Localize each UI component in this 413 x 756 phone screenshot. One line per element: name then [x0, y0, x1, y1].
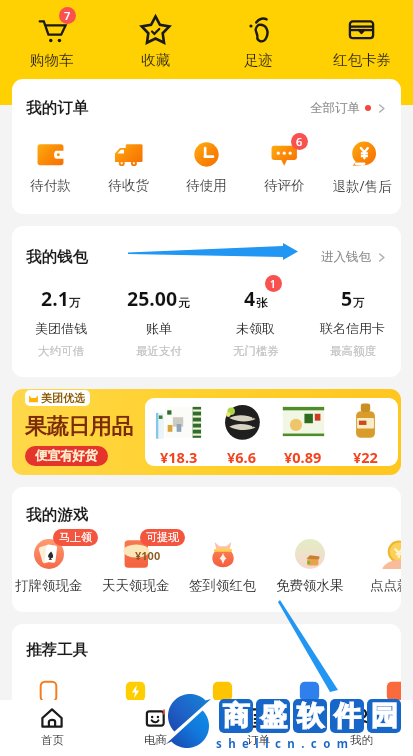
- button[interactable]: 待付款: [12, 141, 89, 194]
- staticText: ¥0.89: [284, 447, 322, 466]
- staticText: 我的游戏: [26, 505, 88, 525]
- button[interactable]: 打牌领现金: [12, 539, 92, 594]
- staticText: 万: [353, 296, 365, 310]
- staticText: 足迹: [244, 51, 273, 69]
- staticText: 件: [334, 699, 361, 733]
- staticText: 7: [64, 8, 71, 23]
- staticText: 红包卡券: [333, 51, 391, 69]
- staticText: 我的订单: [26, 98, 88, 118]
- staticText: 万: [69, 296, 81, 310]
- button[interactable]: 退款/售后: [323, 141, 401, 195]
- staticText: 待使用: [186, 177, 227, 194]
- button[interactable]: ¥6.6: [210, 398, 272, 466]
- staticText: 首页: [41, 733, 64, 747]
- button[interactable]: ¥22: [334, 398, 396, 466]
- staticText: shellcn.com: [216, 736, 355, 752]
- button[interactable]: [266, 680, 353, 703]
- staticText: 6: [296, 134, 303, 149]
- button[interactable]: [12, 680, 92, 703]
- staticText: 可提现: [146, 530, 179, 544]
- button[interactable]: 红包卡券: [310, 0, 413, 79]
- button[interactable]: 待使用: [167, 141, 245, 194]
- button[interactable]: 首页: [0, 706, 104, 756]
- button[interactable]: 点点就赚: [353, 539, 401, 594]
- button[interactable]: 足迹: [207, 0, 310, 79]
- staticText: 联名信用卡: [320, 320, 385, 336]
- staticText: 未领取: [236, 320, 275, 336]
- staticText: 张: [256, 296, 268, 310]
- staticText: 软: [297, 699, 324, 733]
- staticText: 4: [244, 285, 256, 312]
- staticText: 我的: [350, 733, 373, 747]
- button[interactable]: 签到领红包: [179, 539, 266, 594]
- button[interactable]: 进入钱包: [317, 245, 391, 269]
- staticText: 待付款: [30, 177, 71, 194]
- staticText: 待收货: [108, 177, 149, 194]
- staticText: 账单: [146, 320, 172, 336]
- button[interactable]: ¥0.89: [272, 398, 334, 466]
- staticText: 马上领: [59, 530, 92, 544]
- staticText: 签到领红包: [189, 577, 257, 594]
- staticText: ¥22: [353, 447, 378, 466]
- staticText: 天天领现金: [102, 577, 170, 594]
- staticText: 免费领水果: [276, 577, 344, 594]
- button[interactable]: 待收货: [89, 141, 167, 194]
- staticText: 便宜有好货: [35, 448, 98, 464]
- button[interactable]: 订单: [207, 706, 310, 756]
- staticText: 待评价: [264, 177, 305, 194]
- button[interactable]: 收藏: [104, 0, 207, 79]
- staticText: 最高额度: [330, 344, 376, 358]
- staticText: 盛: [260, 699, 287, 733]
- button[interactable]: 电商: [104, 706, 207, 756]
- button[interactable]: 25.00: [110, 285, 207, 358]
- staticText: ¥18.3: [160, 447, 198, 466]
- staticText: 全部订单: [310, 100, 360, 116]
- staticText: 最近支付: [136, 344, 182, 358]
- staticText: 25.00: [127, 285, 178, 312]
- staticText: 我的钱包: [26, 247, 88, 267]
- staticText: 2.1: [41, 285, 69, 312]
- staticText: 美团优选: [41, 391, 85, 405]
- button[interactable]: [179, 680, 266, 703]
- button[interactable]: ¥18.3: [147, 398, 210, 466]
- staticText: 美团借钱: [35, 320, 87, 336]
- staticText: ¥100: [135, 548, 161, 563]
- button[interactable]: 美团优选: [12, 389, 401, 475]
- staticText: 购物车: [30, 51, 74, 69]
- staticText: 订单: [247, 733, 270, 747]
- staticText: 园: [371, 699, 398, 733]
- button[interactable]: [92, 680, 179, 703]
- staticText: 5: [341, 285, 353, 312]
- staticText: 商: [223, 699, 250, 733]
- button[interactable]: 全部订单: [306, 96, 391, 120]
- button[interactable]: 天天领现金: [92, 539, 179, 594]
- staticText: 1: [270, 277, 277, 291]
- button[interactable]: 2.1: [12, 285, 110, 358]
- staticText: 电商: [144, 733, 167, 747]
- button[interactable]: 免费领水果: [266, 539, 353, 594]
- button[interactable]: 6: [245, 141, 323, 194]
- staticText: 元: [178, 296, 190, 310]
- staticText: 果蔬日用品: [25, 413, 133, 441]
- button[interactable]: 我的: [310, 706, 413, 756]
- staticText: 打牌领现金: [15, 577, 83, 594]
- button[interactable]: 5: [304, 285, 401, 358]
- staticText: 点点就赚: [370, 577, 401, 594]
- staticText: ¥6.6: [227, 447, 256, 466]
- button[interactable]: 7: [0, 0, 104, 79]
- button[interactable]: 4: [207, 285, 304, 358]
- staticText: 推荐工具: [26, 640, 88, 660]
- staticText: 收藏: [141, 51, 170, 69]
- staticText: 大约可借: [38, 344, 84, 358]
- button[interactable]: [353, 680, 401, 703]
- staticText: 退款/售后: [332, 177, 392, 195]
- staticText: 进入钱包: [321, 249, 371, 265]
- staticText: 无门槛券: [233, 344, 279, 358]
